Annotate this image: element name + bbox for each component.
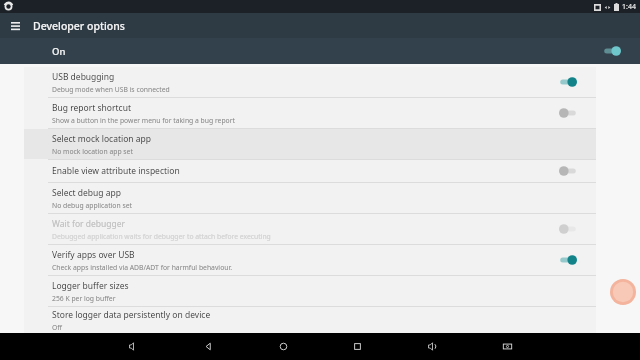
- staticText: USB debugging: [52, 71, 115, 83]
- button[interactable]: Store logger data persistently on device: [24, 307, 596, 333]
- button[interactable]: Enable view attribute inspection: [24, 160, 596, 182]
- button[interactable]: Bug report shortcut: [24, 98, 596, 128]
- staticText: Show a button in the power menu for taki…: [52, 116, 235, 125]
- button[interactable]: Logger buffer sizes: [24, 276, 596, 306]
- staticText: Select debug app: [52, 187, 121, 199]
- staticText: Select mock location app: [52, 133, 152, 145]
- staticText: Verify apps over USB: [52, 249, 135, 261]
- staticText: Debugged application waits for debugger …: [52, 232, 271, 241]
- button[interactable]: Volume up: [419, 333, 445, 360]
- staticText: Store logger data persistently on device: [52, 309, 211, 321]
- staticText: On: [52, 45, 66, 58]
- button[interactable]: Wait for debugger: [24, 214, 596, 244]
- button[interactable]: Volume down: [120, 333, 146, 360]
- staticText: Wait for debugger: [52, 218, 126, 230]
- staticText: Developer options: [33, 19, 125, 33]
- button[interactable]: Back: [195, 333, 221, 360]
- staticText: Off: [52, 323, 62, 332]
- staticText: Check apps installed via ADB/ADT for har…: [52, 263, 232, 272]
- button[interactable]: Recent apps: [344, 333, 370, 360]
- button[interactable]: Screenshot: [494, 333, 520, 360]
- staticText: No debug application set: [52, 201, 132, 210]
- button[interactable]: Verify apps over USB: [24, 245, 596, 275]
- staticText: Debug mode when USB is connected: [52, 85, 170, 94]
- staticText: Enable view attribute inspection: [52, 165, 180, 177]
- staticText: Bug report shortcut: [52, 102, 131, 114]
- button[interactable]: Select mock location app: [24, 129, 596, 159]
- button[interactable]: USB debugging: [24, 67, 596, 97]
- staticText: No mock location app set: [52, 147, 133, 156]
- button[interactable]: Navigate up: [6, 17, 24, 35]
- staticText: 1:44: [622, 2, 636, 12]
- staticText: 256 K per log buffer: [52, 294, 116, 303]
- button[interactable]: Home: [270, 333, 296, 360]
- button[interactable]: On: [0, 38, 640, 64]
- button[interactable]: Select debug app: [24, 183, 596, 213]
- staticText: Logger buffer sizes: [52, 280, 129, 292]
